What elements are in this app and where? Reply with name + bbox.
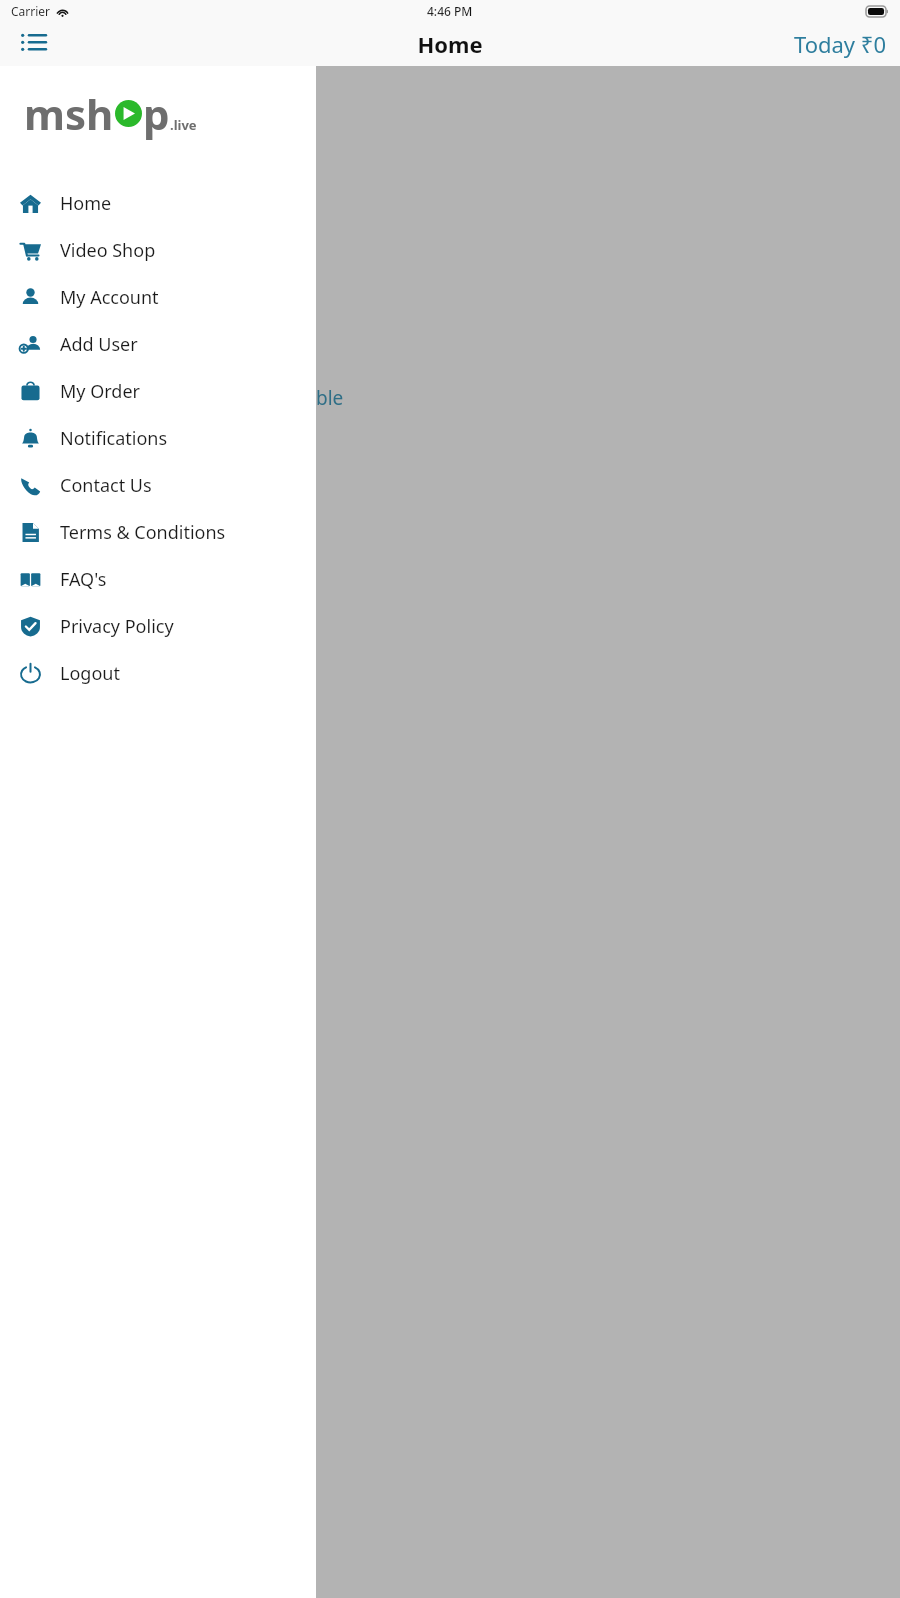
staticText: Notifications bbox=[60, 426, 168, 451]
staticText: p bbox=[143, 85, 170, 142]
staticText: My Account bbox=[60, 285, 159, 310]
staticText: Add User bbox=[60, 332, 138, 357]
staticText: 4:46 PM bbox=[427, 3, 473, 19]
staticText: Contact Us bbox=[60, 473, 152, 498]
button[interactable]: Video Shop bbox=[0, 227, 316, 274]
button[interactable]: Add User bbox=[0, 321, 316, 368]
button[interactable]: Menu bbox=[12, 22, 56, 66]
button[interactable]: Home bbox=[0, 180, 316, 227]
button[interactable]: Notifications bbox=[0, 415, 316, 462]
staticText: Carrier bbox=[11, 3, 51, 19]
button[interactable]: Today ₹0 bbox=[794, 29, 886, 59]
button[interactable]: My Order bbox=[0, 368, 316, 415]
staticText: Home bbox=[417, 29, 483, 59]
staticText: Logout bbox=[60, 661, 120, 686]
staticText: FAQ's bbox=[60, 567, 107, 592]
staticText: .live bbox=[170, 116, 197, 134]
button[interactable]: FAQ's bbox=[0, 556, 316, 603]
staticText: msh bbox=[24, 85, 114, 142]
staticText: Terms & Conditions bbox=[60, 520, 226, 545]
button[interactable]: My Account bbox=[0, 274, 316, 321]
staticText: Today ₹0 bbox=[794, 29, 886, 59]
button[interactable]: Privacy Policy bbox=[0, 603, 316, 650]
button[interactable]: Contact Us bbox=[0, 462, 316, 509]
staticText: My Order bbox=[60, 379, 140, 404]
button[interactable]: Logout bbox=[0, 650, 316, 697]
staticText: ble bbox=[316, 385, 344, 411]
staticText: Video Shop bbox=[60, 238, 156, 263]
staticText: Privacy Policy bbox=[60, 614, 174, 639]
button[interactable]: Terms & Conditions bbox=[0, 509, 316, 556]
staticText: Home bbox=[60, 191, 112, 216]
